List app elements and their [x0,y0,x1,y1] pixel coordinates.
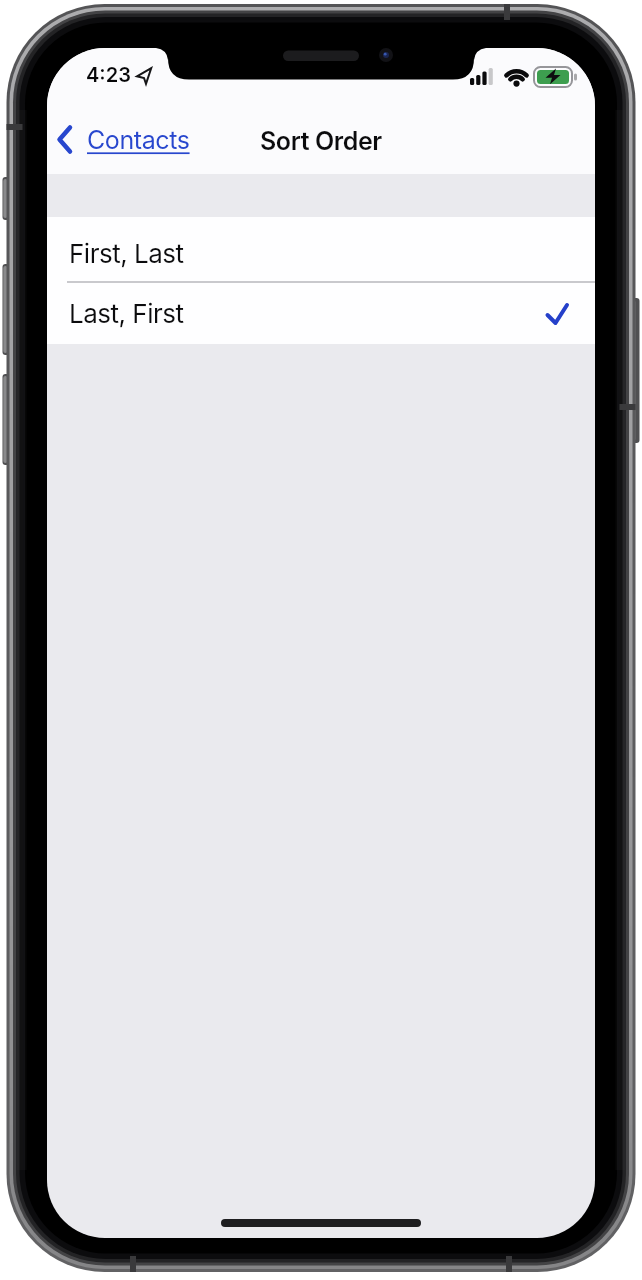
staticText: 4:23 [86,63,131,87]
button[interactable]: Contacts [57,125,186,155]
button[interactable]: First, Last [47,217,595,281]
staticText: Sort Order [260,126,382,156]
button[interactable]: Last, First [47,283,595,344]
staticText: First, Last [69,238,184,269]
staticText: Contacts [87,125,190,155]
staticText: Last, First [69,298,184,329]
